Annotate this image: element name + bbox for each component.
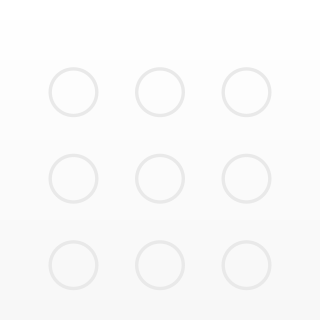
button[interactable]: Option 5 [135, 154, 185, 204]
button[interactable]: Option 7 [48, 240, 98, 290]
button[interactable]: Option 6 [221, 154, 271, 204]
button[interactable]: Option 2 [135, 67, 185, 117]
button[interactable]: Option 4 [48, 154, 98, 204]
button[interactable]: Option 1 [48, 67, 98, 117]
button[interactable]: Option 3 [221, 67, 271, 117]
button[interactable]: Option 9 [221, 240, 271, 290]
button[interactable]: Option 8 [135, 240, 185, 290]
